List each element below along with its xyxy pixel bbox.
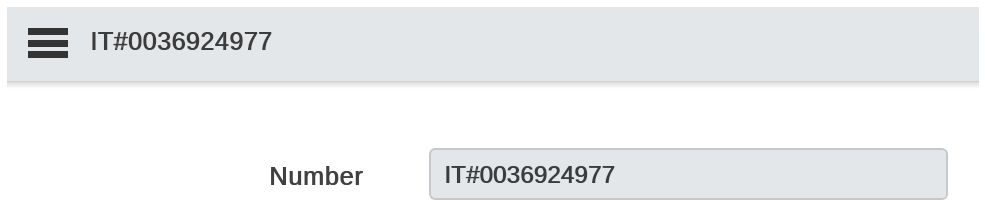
button[interactable]: IT#0036924977 (429, 148, 948, 200)
staticText: Number (270, 162, 365, 190)
staticText: IT#0036924977 (90, 27, 273, 55)
staticText: IT#0036924977 (444, 161, 615, 188)
staticText: IT#0036924977 (445, 161, 616, 188)
staticText: Number (269, 162, 364, 190)
button[interactable]: Open navigation menu (20, 20, 75, 66)
staticText: IT#0036924977 (91, 27, 274, 55)
